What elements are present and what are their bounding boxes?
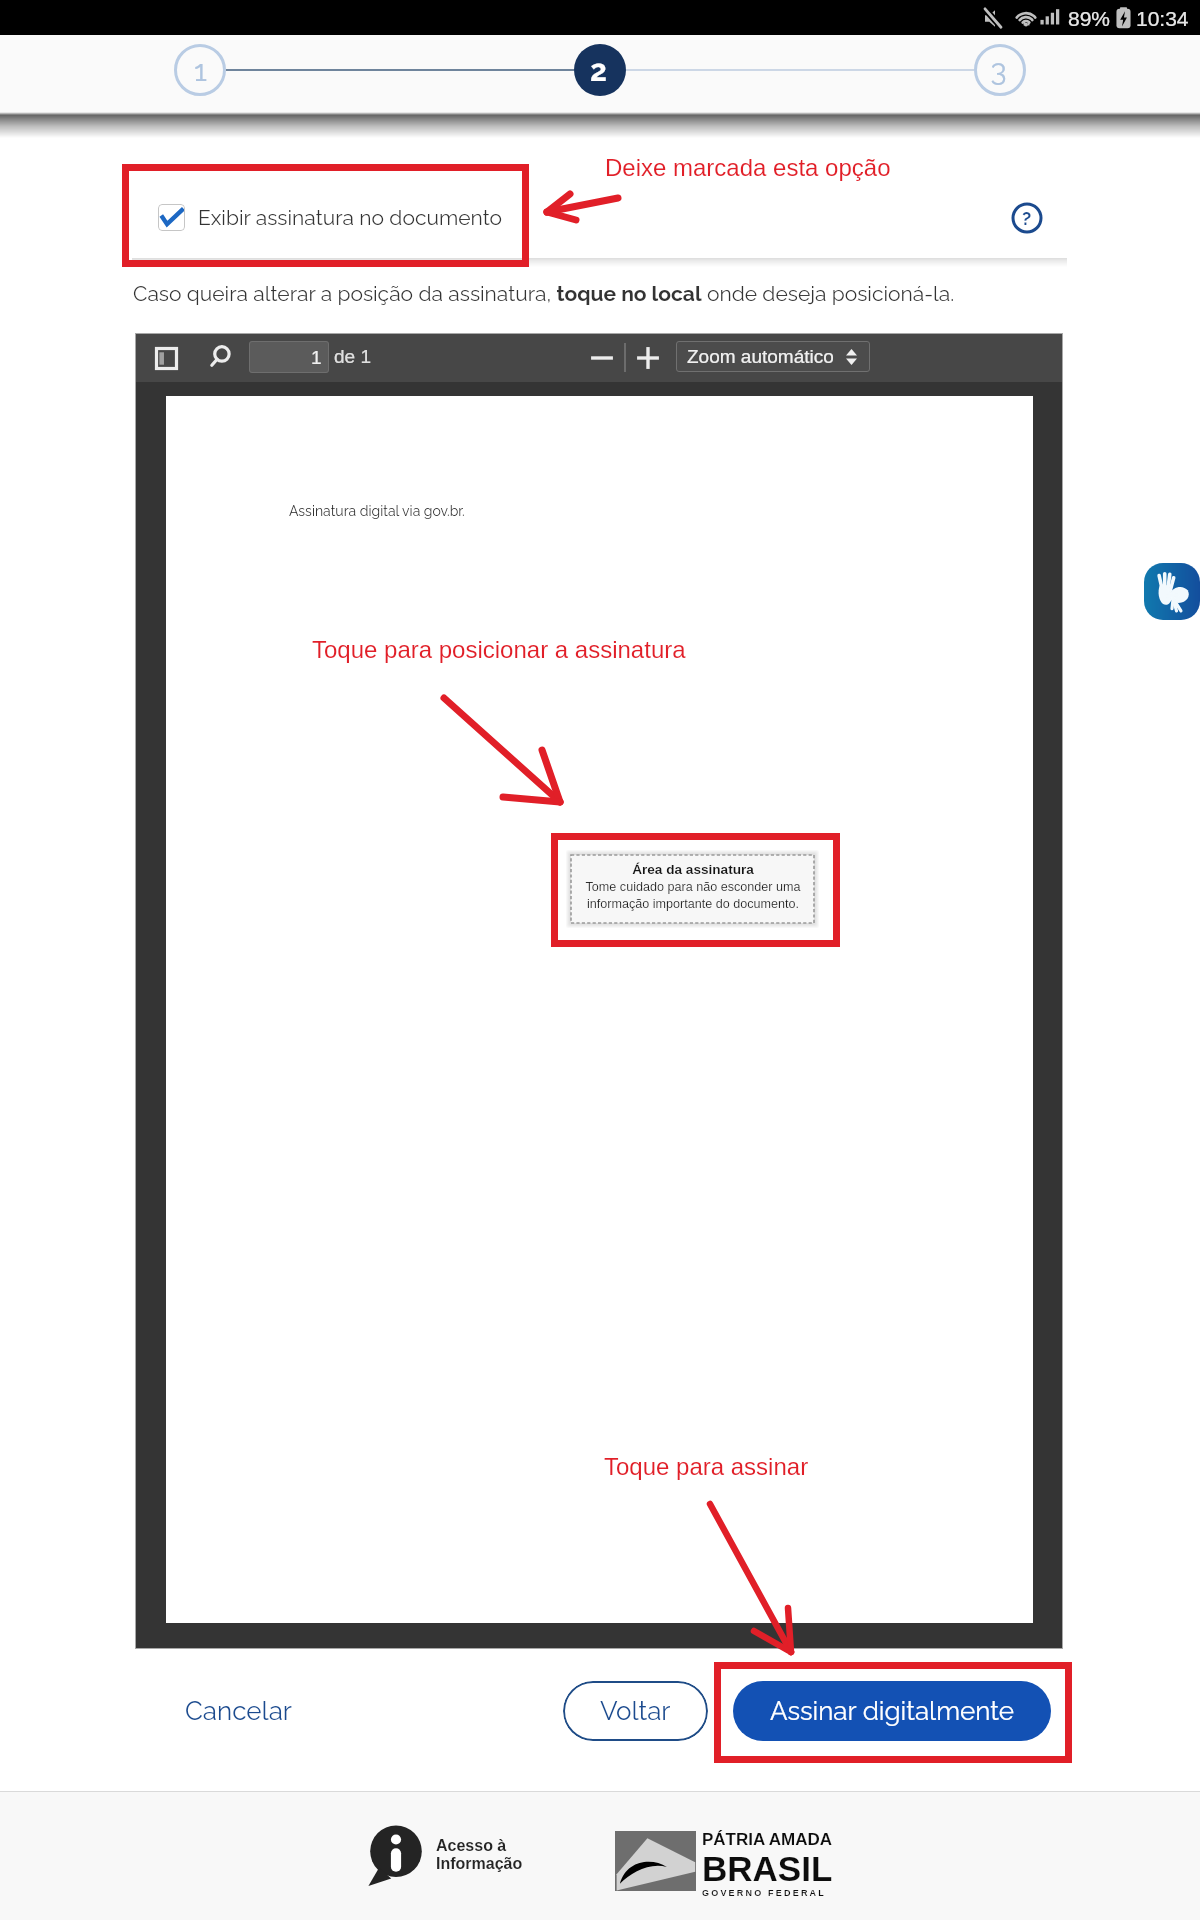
staticText: GOVERNO FEDERAL (702, 1888, 827, 1898)
staticText: 3 (990, 53, 1007, 88)
staticText: Informação (436, 1855, 523, 1873)
button[interactable]: Voltar (563, 1681, 708, 1741)
button[interactable]: Diminuir zoom (589, 345, 615, 371)
staticText: BRASIL (702, 1849, 833, 1888)
button[interactable]: Exibir assinatura no documento (132, 177, 1065, 258)
button[interactable]: Pesquisar (208, 346, 232, 370)
button[interactable]: 1 (249, 341, 329, 373)
button[interactable]: PÁTRIA AMADA (615, 1831, 833, 1899)
button[interactable]: Cancelar (162, 1681, 314, 1741)
staticText: ? (1022, 207, 1032, 229)
staticText: Área da assinatura (632, 862, 754, 877)
staticText: 89% (1068, 7, 1111, 30)
staticText: Assinar digitalmente (770, 1696, 1015, 1727)
button[interactable]: Ajuda (1011, 202, 1043, 234)
staticText: Zoom automático (687, 346, 834, 367)
staticText: 10:34 (1136, 7, 1189, 30)
button[interactable]: Alternar barra lateral (155, 347, 178, 370)
button[interactable]: Aumentar zoom (635, 345, 661, 371)
staticText: Tome cuidado para não esconder uma infor… (582, 880, 804, 910)
staticText: Deixe marcada esta opção (605, 154, 891, 181)
staticText: 1 (194, 53, 207, 88)
staticText: de 1 (334, 346, 371, 367)
button[interactable]: Zoom automático (676, 341, 870, 372)
button[interactable]: Acesso à (366, 1824, 523, 1886)
staticText: Toque para assinar (604, 1453, 809, 1480)
staticText: Voltar (600, 1696, 671, 1727)
staticText: 1 (311, 347, 322, 368)
staticText: 2 (590, 53, 607, 88)
staticText: Toque para posicionar a assinatura (312, 636, 686, 663)
staticText: Acesso à (436, 1837, 507, 1855)
staticText: Cancelar (185, 1696, 292, 1727)
button[interactable]: Assinar digitalmente (733, 1681, 1051, 1741)
staticText: PÁTRIA AMADA (702, 1830, 833, 1849)
button[interactable]: Assinatura digital via gov.br. (166, 396, 1033, 1623)
staticText: Exibir assinatura no documento (198, 205, 503, 230)
button[interactable]: Acessibilidade em Libras (1144, 563, 1200, 620)
staticText: Caso queira alterar a posição da assinat… (133, 281, 955, 306)
staticText: Assinatura digital via gov.br. (289, 503, 465, 519)
